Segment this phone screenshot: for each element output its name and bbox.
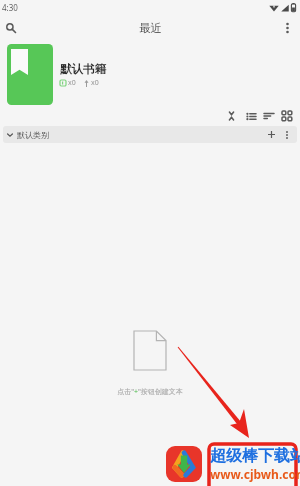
button[interactable]: 默认书籍 <box>0 41 300 106</box>
button[interactable]: 默认类别 <box>6 130 49 140</box>
button[interactable]: Category options <box>279 126 295 143</box>
button[interactable]: More options <box>274 15 300 41</box>
staticText: 4:30 <box>2 2 18 13</box>
staticText: 点击"+"按钮创建文本 <box>117 387 183 397</box>
staticText: 默认书籍 <box>60 62 106 76</box>
staticText: x0 <box>91 78 99 88</box>
button[interactable]: Numbered list <box>242 106 260 126</box>
button[interactable]: Search <box>0 17 22 39</box>
button[interactable]: Collapse <box>220 106 242 126</box>
button[interactable]: Add <box>263 126 279 143</box>
button[interactable]: Sort <box>260 106 278 126</box>
staticText: 默认类别 <box>17 130 49 140</box>
staticText: 最近 <box>139 21 162 35</box>
staticText: www.cjbwh.com <box>210 466 300 482</box>
staticText: x0 <box>68 78 76 88</box>
staticText: 超级棒下载站 <box>210 446 300 466</box>
button[interactable]: Grid view <box>278 106 296 126</box>
